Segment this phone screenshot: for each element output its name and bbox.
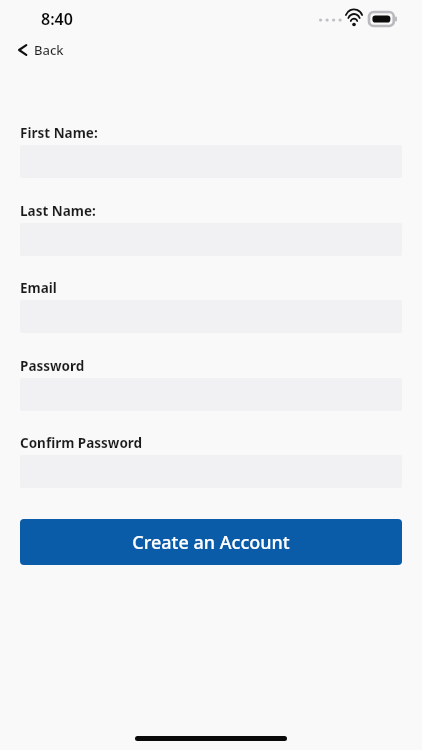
staticText: Create an Account xyxy=(132,530,290,555)
button[interactable]: Create an Account xyxy=(20,519,402,565)
button[interactable]: Back xyxy=(12,38,70,62)
staticText: 8:40 xyxy=(41,8,73,30)
other: Home indicator xyxy=(135,736,287,741)
staticText: Email xyxy=(20,279,57,297)
staticText: Back xyxy=(34,41,64,59)
staticText: Password xyxy=(20,357,85,375)
staticText: Confirm Password xyxy=(20,434,143,452)
staticText: First Name: xyxy=(20,124,98,142)
staticText: Last Name: xyxy=(20,202,96,220)
